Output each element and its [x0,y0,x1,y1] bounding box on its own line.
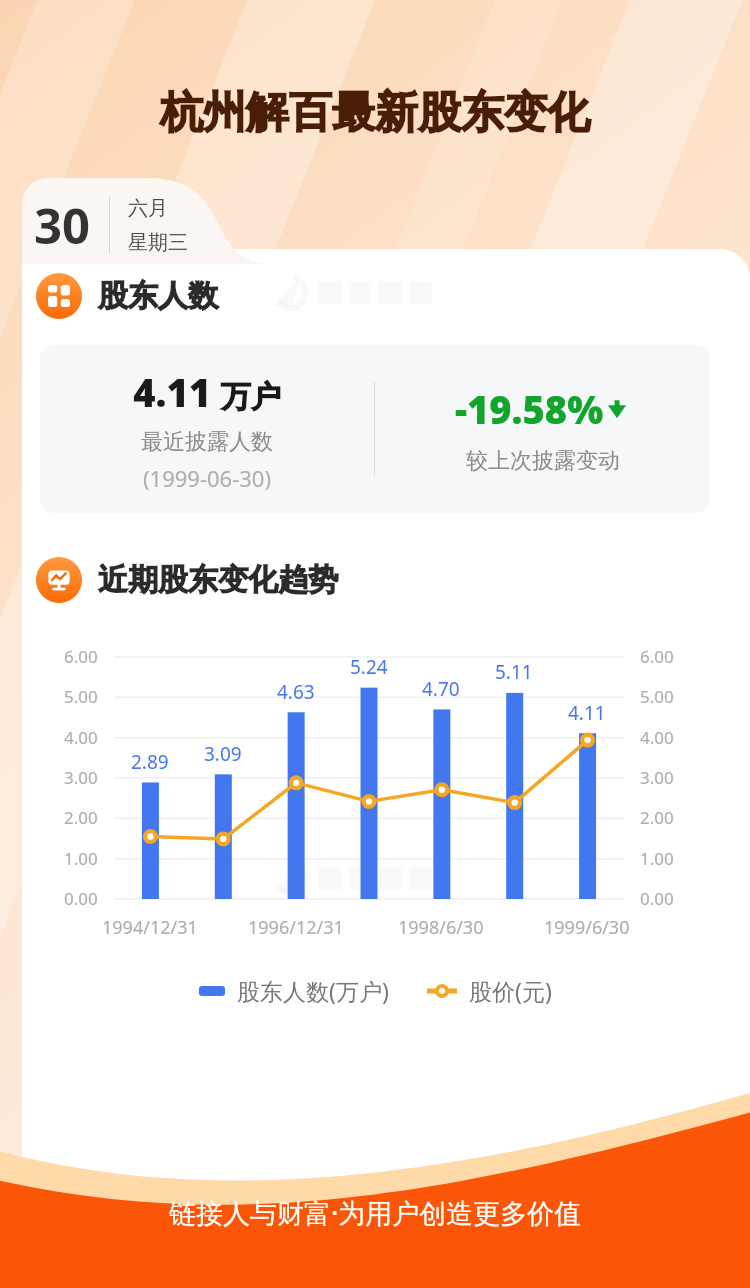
staticText: 1998/6/30 [398,915,484,940]
button[interactable]: 股东人数 [36,273,218,319]
staticText: 30 [34,192,91,259]
staticText: 股东人数 [98,277,218,315]
staticText: 1.00 [64,847,98,870]
staticText: 4.00 [640,726,674,749]
staticText: 5.11 [495,659,533,685]
staticText: 5.00 [64,685,98,708]
staticText: 星期三 [128,230,188,255]
staticText: 最近披露人数 [141,428,273,456]
button[interactable]: 股东人数(万户) [199,975,389,1006]
staticText: 0.00 [640,887,674,910]
staticText: 0.00 [64,887,98,910]
staticText: 4.70 [422,676,460,702]
staticText: 1.00 [640,847,674,870]
staticText: 4.63 [277,679,315,705]
staticText: 3.09 [204,741,242,767]
button[interactable]: 股价(元) [427,975,552,1006]
staticText: 近期股东变化趋势 [98,561,338,599]
staticText: 1996/12/31 [248,915,344,940]
staticText: 六月 [128,196,168,221]
staticText: 5.24 [350,654,388,680]
other: 股东人数 [36,273,82,319]
staticText: 3.00 [640,766,674,789]
staticText: 2.89 [131,749,169,775]
staticText: 2.00 [640,806,674,829]
staticText: -19.58% [455,383,604,435]
staticText: 杭州解百最新股东变化 [160,86,590,140]
staticText: 1994/12/31 [102,915,198,940]
button[interactable]: 近期股东变化趋势 [36,557,338,603]
staticText: 6.00 [640,645,674,668]
staticText: 3.00 [64,766,98,789]
button[interactable]: 4.11 万户 [40,345,710,513]
staticText: 4.11 [568,700,606,726]
staticText: (1999-06-30) [143,463,272,493]
staticText: 2.00 [64,806,98,829]
staticText: 4.11 万户 [133,366,281,418]
staticText: 1999/6/30 [544,915,630,940]
staticText: 链接人与财富·为用户创造更多价值 [169,1194,582,1231]
staticText: 5.00 [640,685,674,708]
staticText: 4.00 [64,726,98,749]
other: 近期股东变化趋势 [36,557,82,603]
staticText: 6.00 [64,645,98,668]
staticText: 较上次披露变动 [466,447,620,475]
staticText: 股东人数(万户) [237,975,389,1006]
staticText: 股价(元) [469,975,552,1006]
